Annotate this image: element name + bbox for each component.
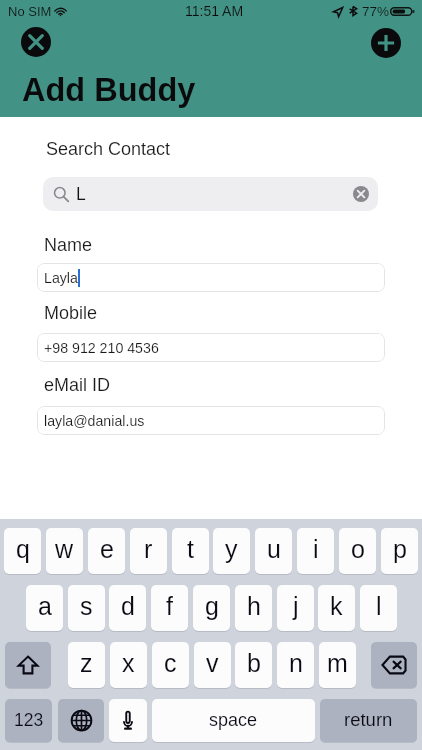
button[interactable]: v — [194, 642, 231, 688]
staticText: No SIM — [8, 4, 52, 19]
button[interactable]: k — [318, 585, 355, 631]
staticText: q — [16, 535, 30, 563]
staticText: a — [38, 592, 52, 620]
staticText: return — [344, 709, 393, 730]
button[interactable]: c — [152, 642, 189, 688]
button[interactable]: Change keyboard — [58, 699, 104, 742]
button[interactable]: s — [68, 585, 105, 631]
staticText: t — [187, 535, 194, 563]
button[interactable]: n — [277, 642, 314, 688]
button[interactable]: q — [4, 528, 41, 574]
staticText: v — [206, 649, 219, 677]
staticText: s — [80, 592, 93, 620]
button[interactable]: g — [193, 585, 230, 631]
button[interactable]: Shift — [5, 642, 51, 688]
button[interactable]: d — [109, 585, 146, 631]
button[interactable]: o — [339, 528, 376, 574]
button[interactable]: b — [235, 642, 272, 688]
staticText: h — [247, 592, 261, 620]
staticText: i — [313, 535, 319, 563]
staticText: L — [76, 184, 86, 204]
staticText: o — [351, 535, 365, 563]
button[interactable]: l — [360, 585, 397, 631]
button[interactable]: h — [235, 585, 272, 631]
staticText: +98 912 210 4536 — [44, 340, 159, 356]
staticText: x — [122, 649, 135, 677]
staticText: l — [376, 592, 382, 620]
staticText: c — [164, 649, 177, 677]
button[interactable]: j — [277, 585, 314, 631]
staticText: e — [100, 535, 114, 563]
button[interactable]: return — [320, 699, 417, 742]
button[interactable]: L — [43, 177, 378, 211]
button[interactable]: Layla — [37, 263, 385, 292]
button[interactable]: x — [110, 642, 147, 688]
staticText: w — [55, 535, 74, 563]
staticText: space — [209, 710, 258, 730]
button[interactable]: Backspace — [371, 642, 417, 688]
button[interactable]: r — [130, 528, 167, 574]
staticText: u — [267, 535, 281, 563]
button[interactable]: Clear text — [353, 186, 369, 202]
staticText: Layla — [44, 270, 78, 286]
button[interactable]: u — [255, 528, 292, 574]
staticText: f — [166, 592, 173, 620]
staticText: b — [247, 649, 261, 677]
staticText: j — [293, 592, 299, 620]
button[interactable]: e — [88, 528, 125, 574]
button[interactable]: i — [297, 528, 334, 574]
button[interactable]: p — [381, 528, 418, 574]
button[interactable]: y — [213, 528, 250, 574]
button[interactable]: Add — [371, 28, 401, 58]
button[interactable]: f — [151, 585, 188, 631]
button[interactable]: w — [46, 528, 83, 574]
button[interactable]: Dictate — [109, 699, 147, 742]
staticText: eMail ID — [44, 375, 111, 395]
button[interactable]: space — [152, 699, 315, 742]
staticText: 11:51 AM — [185, 3, 244, 19]
staticText: r — [144, 535, 153, 563]
button[interactable]: z — [68, 642, 105, 688]
staticText: Search Contact — [46, 139, 171, 159]
button[interactable]: 123 — [5, 699, 52, 742]
staticText: z — [80, 649, 93, 677]
staticText: d — [121, 592, 135, 620]
button[interactable]: +98 912 210 4536 — [37, 333, 385, 362]
staticText: n — [289, 649, 303, 677]
staticText: 77% — [362, 4, 390, 19]
staticText: layla@danial.us — [44, 413, 145, 429]
staticText: y — [225, 535, 238, 563]
staticText: p — [393, 535, 407, 563]
staticText: Mobile — [44, 303, 98, 323]
button[interactable]: m — [319, 642, 356, 688]
button[interactable]: layla@danial.us — [37, 406, 385, 435]
staticText: 123 — [14, 710, 44, 730]
staticText: k — [330, 592, 343, 620]
button[interactable]: t — [172, 528, 209, 574]
staticText: m — [327, 649, 348, 677]
staticText: Name — [44, 235, 93, 255]
staticText: Add Buddy — [22, 72, 196, 108]
button[interactable]: Close — [21, 27, 51, 57]
button[interactable]: a — [26, 585, 63, 631]
staticText: g — [205, 592, 219, 620]
